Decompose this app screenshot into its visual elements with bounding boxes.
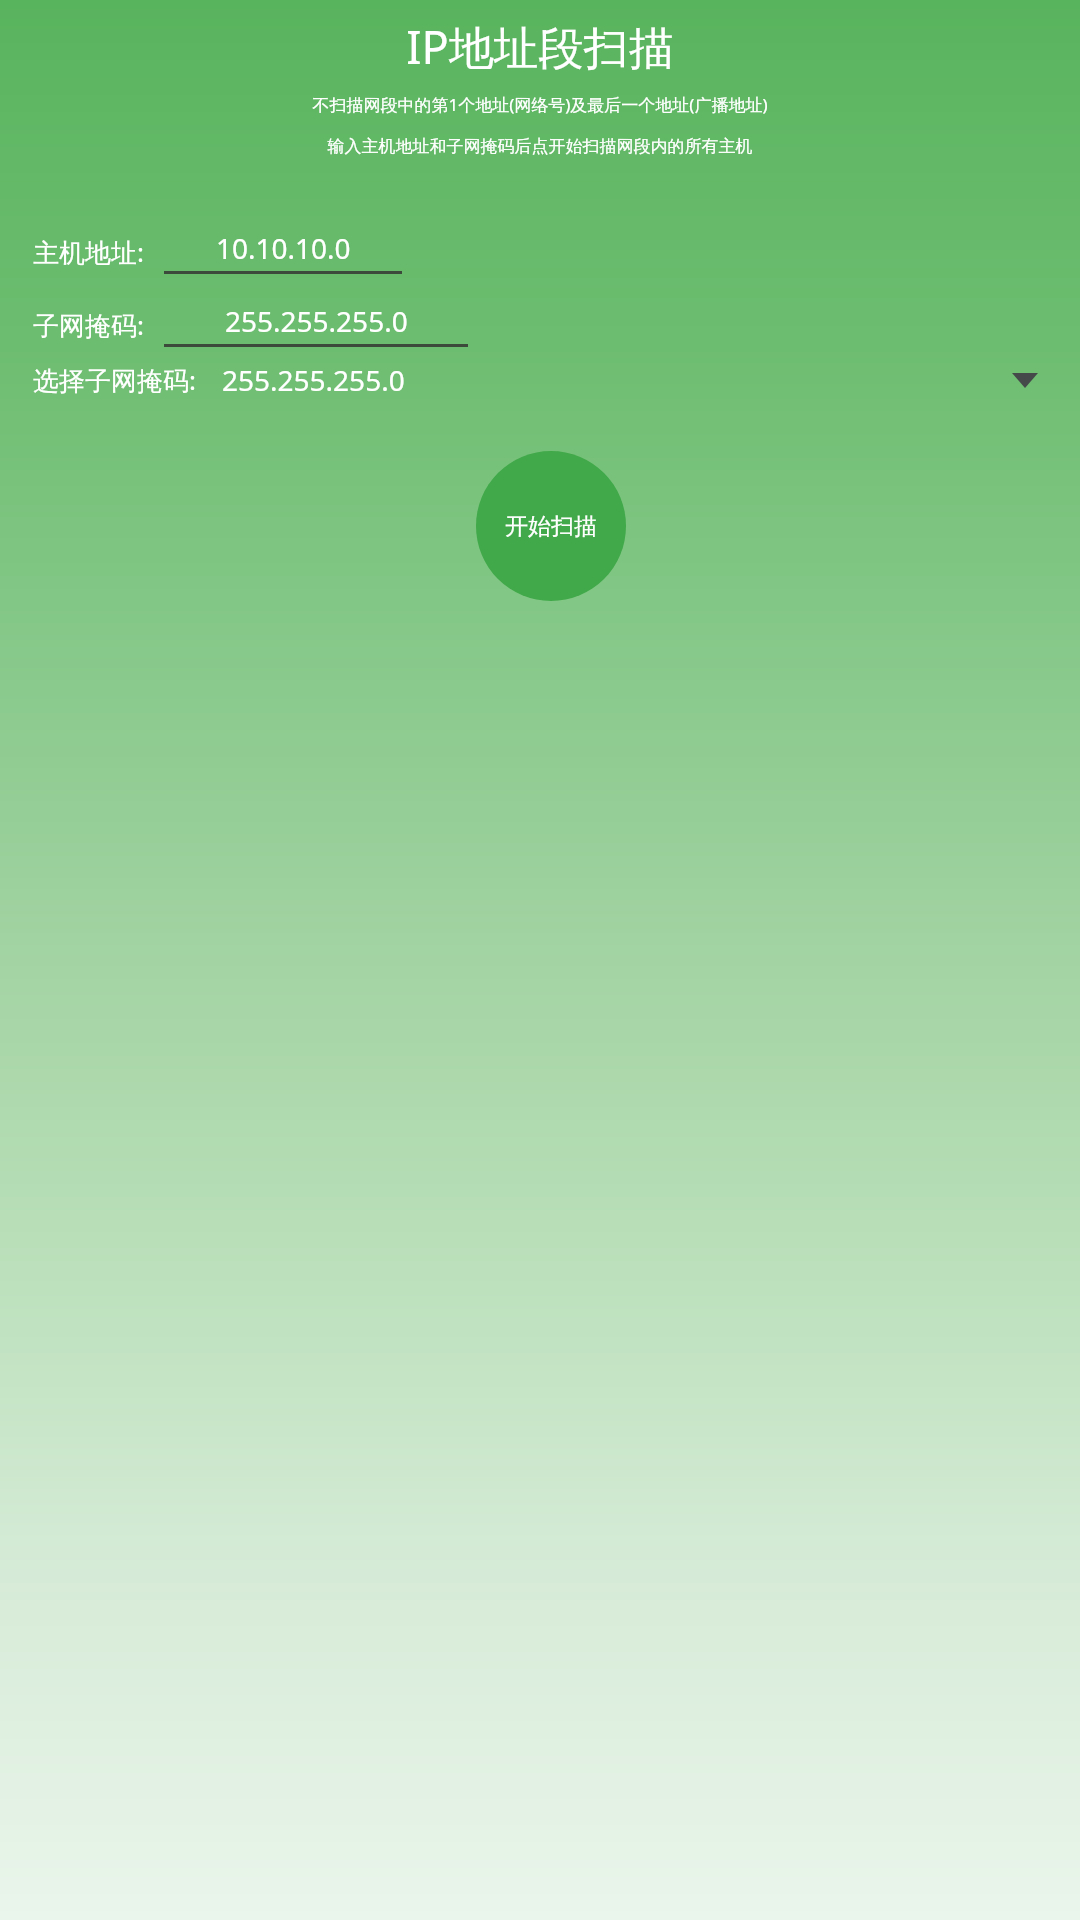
staticText: 子网掩码:: [33, 307, 144, 343]
button[interactable]: 子网掩码:: [33, 302, 1056, 347]
staticText: 255.255.255.0: [225, 302, 408, 340]
staticText: 不扫描网段中的第1个地址(网络号)及最后一个地址(广播地址): [8, 93, 1072, 116]
button[interactable]: 主机地址:: [33, 229, 1056, 274]
staticText: 选择子网掩码:: [33, 362, 196, 398]
staticText: 10.10.10.0: [216, 229, 351, 267]
button[interactable]: 选择子网掩码: [33, 361, 1056, 399]
staticText: 开始扫描: [505, 512, 597, 541]
staticText: 主机地址:: [33, 234, 144, 270]
staticText: 输入主机地址和子网掩码后点开始扫描网段内的所有主机: [8, 136, 1072, 157]
staticText: IP地址段扫描: [0, 16, 1080, 77]
staticText: 255.255.255.0: [222, 361, 405, 399]
button[interactable]: 开始扫描: [476, 451, 626, 601]
